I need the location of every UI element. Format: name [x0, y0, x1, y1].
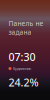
staticText: Панель не задана — [8, 19, 43, 37]
staticText: 07:30 — [8, 50, 35, 64]
staticText: 24.2% — [8, 75, 38, 89]
staticText: Будильник — [13, 66, 31, 71]
